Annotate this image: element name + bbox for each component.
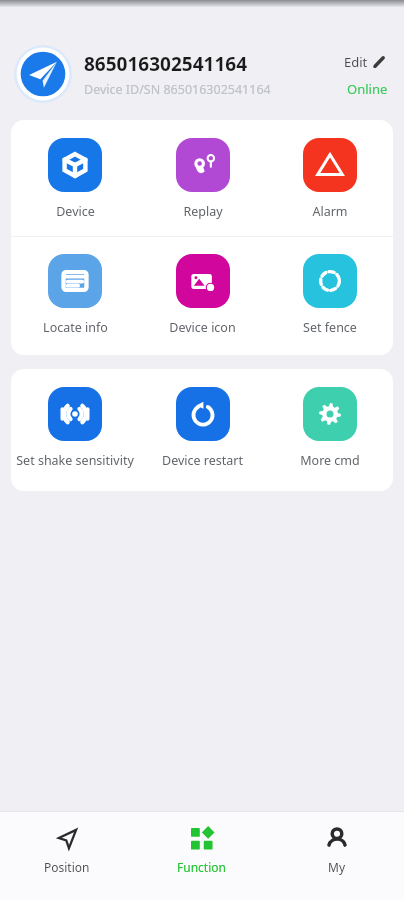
button[interactable]: Position bbox=[0, 812, 134, 883]
staticText: Position bbox=[44, 859, 90, 875]
button[interactable]: Replay bbox=[139, 136, 266, 222]
button[interactable]: My bbox=[269, 812, 404, 883]
staticText: Locate info bbox=[43, 319, 108, 336]
button[interactable]: Function bbox=[134, 812, 269, 883]
button[interactable]: Device bbox=[11, 136, 139, 222]
button[interactable]: Locate info bbox=[11, 252, 139, 338]
staticText: Online bbox=[347, 80, 388, 98]
staticText: Set fence bbox=[303, 319, 357, 336]
staticText: Edit bbox=[344, 53, 368, 71]
button[interactable]: Device icon bbox=[139, 252, 266, 338]
staticText: Device restart bbox=[162, 452, 243, 469]
staticText: Device bbox=[56, 203, 95, 220]
staticText: 865016302541164 bbox=[84, 51, 248, 77]
staticText: Set shake sensitivity bbox=[16, 452, 134, 469]
button[interactable]: More cmd bbox=[266, 385, 393, 471]
staticText: Alarm bbox=[312, 203, 348, 220]
button[interactable]: Device restart bbox=[139, 385, 266, 471]
button[interactable]: Set shake sensitivity bbox=[11, 385, 139, 471]
staticText: Replay bbox=[183, 203, 223, 220]
staticText: More cmd bbox=[300, 452, 360, 469]
staticText: Device ID/SN 865016302541164 bbox=[84, 81, 271, 98]
staticText: Device icon bbox=[169, 319, 236, 336]
button[interactable]: Alarm bbox=[266, 136, 393, 222]
staticText: Function bbox=[177, 859, 226, 875]
button[interactable]: Set fence bbox=[266, 252, 393, 338]
staticText: My bbox=[328, 859, 346, 875]
button[interactable]: Edit bbox=[342, 51, 388, 73]
